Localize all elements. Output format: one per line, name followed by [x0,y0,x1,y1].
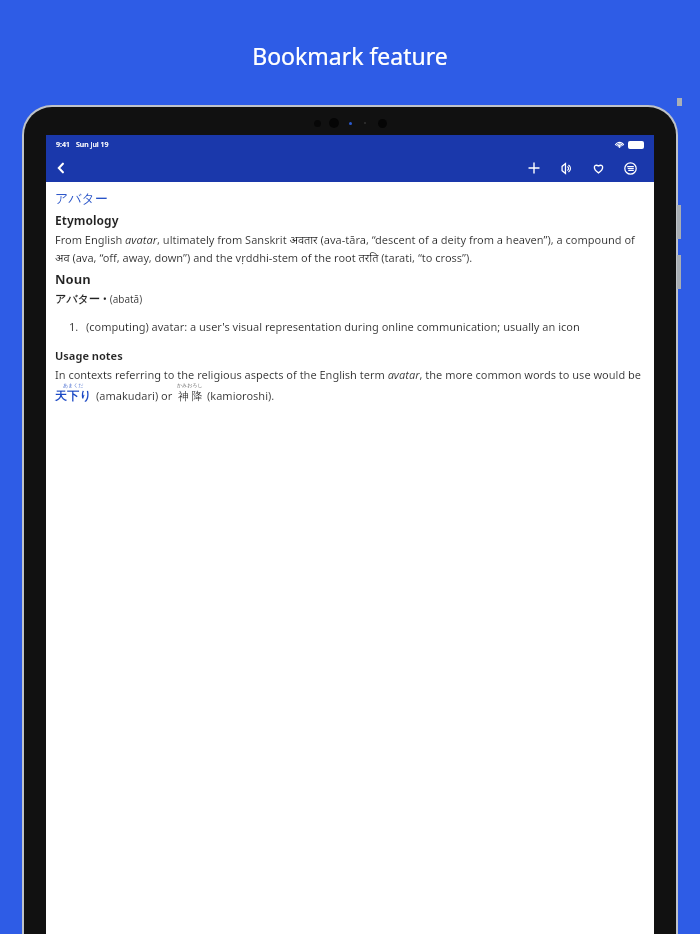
button[interactable]: Bookmark [582,154,614,182]
button[interactable]: Table of contents [614,154,646,182]
staticText: 1. [69,319,79,334]
staticText: Bookmark feature [0,40,700,71]
staticText: In contexts referring to the religious a… [55,367,644,382]
staticText: From English avatar, ultimately from San… [55,232,645,265]
staticText: (amakudari) or [96,388,173,403]
staticText: 天下り [55,388,92,403]
staticText: (computing) avatar: a user's visual repr… [86,319,580,334]
staticText: あまくだ [63,382,84,388]
staticText: (kamioroshi). [207,388,275,403]
staticText: Etymology [55,212,119,228]
staticText: Usage notes [55,348,123,363]
button[interactable]: Back [46,154,76,182]
staticText: 9:41 [56,140,70,150]
staticText: アバター • (abatā) [55,291,143,306]
staticText: アバター [55,190,108,206]
staticText: Sun Jul 19 [76,140,109,150]
staticText: 神 降 [178,388,203,403]
staticText: かみおろし [177,382,203,388]
button[interactable]: Add [518,154,550,182]
staticText: Noun [55,270,91,288]
button[interactable]: Pronounce [550,154,582,182]
